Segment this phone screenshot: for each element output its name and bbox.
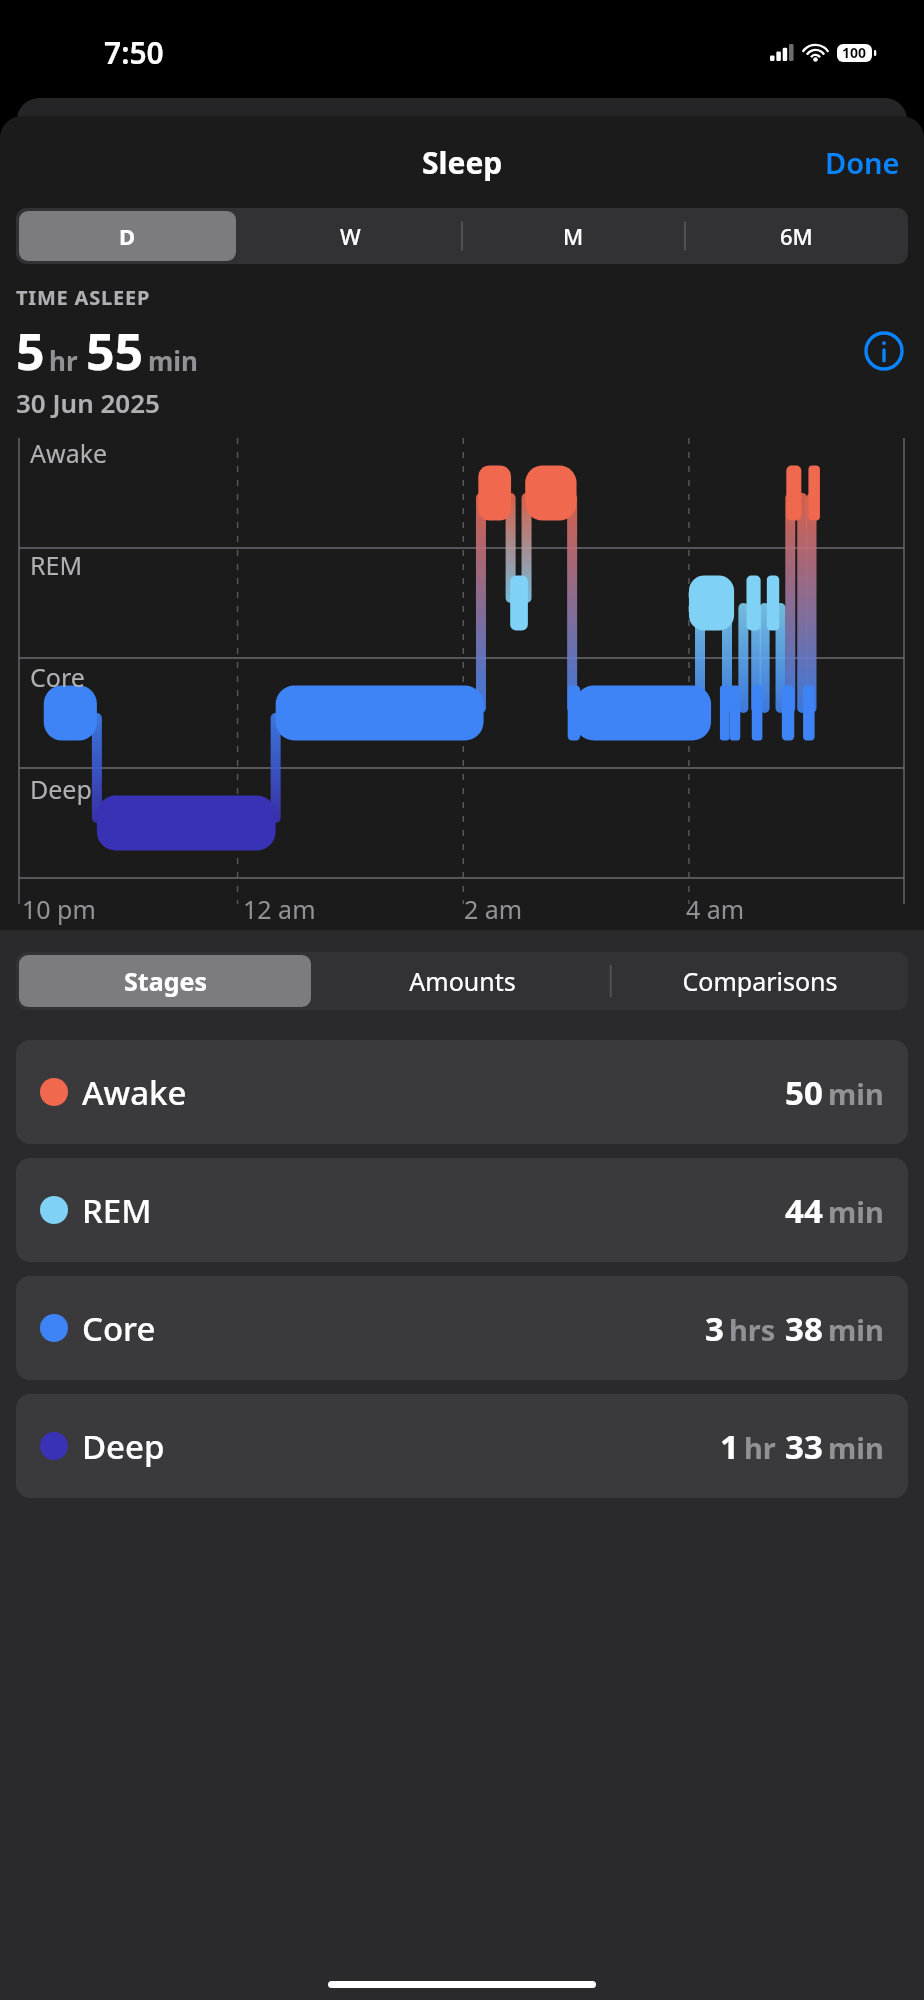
staticText: min — [828, 1310, 884, 1349]
staticText: Comparisons — [682, 964, 838, 998]
button[interactable]: Comparisons — [614, 955, 905, 1007]
staticText: REM — [30, 548, 83, 582]
button[interactable]: Awake — [16, 1040, 908, 1144]
staticText: Amounts — [409, 964, 516, 998]
staticText: Awake — [30, 436, 108, 470]
button[interactable]: W — [242, 211, 459, 261]
staticText: 4 am — [686, 892, 745, 926]
staticText: 33 — [785, 1424, 823, 1469]
staticText: 30 Jun 2025 — [16, 385, 160, 420]
staticText: min — [828, 1074, 884, 1113]
button[interactable]: Deep — [16, 1394, 908, 1498]
staticText: Deep — [30, 772, 92, 806]
staticText: hr — [49, 343, 78, 378]
staticText: Core — [30, 660, 85, 694]
staticText: Core — [82, 1306, 156, 1351]
staticText: 10 pm — [22, 892, 96, 926]
staticText: Stages — [124, 964, 207, 998]
staticText: TIME ASLEEP — [16, 284, 151, 311]
button[interactable]: D — [19, 211, 236, 261]
staticText: 50 — [785, 1070, 823, 1115]
staticText: 7:50 — [104, 32, 164, 73]
button[interactable]: 6M — [688, 211, 905, 261]
staticText: 55 — [86, 317, 144, 385]
staticText: 3 — [705, 1306, 724, 1351]
staticText: M — [563, 221, 584, 251]
staticText: 6M — [780, 221, 813, 251]
staticText: Deep — [82, 1424, 165, 1469]
staticText: min — [148, 343, 199, 378]
button[interactable]: Stages — [19, 955, 311, 1007]
staticText: min — [828, 1192, 884, 1231]
staticText: Sleep — [422, 142, 503, 183]
staticText: 1 — [720, 1424, 739, 1469]
staticText: 2 am — [464, 892, 523, 926]
staticText: REM — [82, 1188, 152, 1233]
button[interactable]: Done — [815, 135, 910, 190]
staticText: hrs — [729, 1310, 776, 1349]
staticText: 44 — [785, 1188, 823, 1233]
staticText: min — [828, 1428, 884, 1467]
button[interactable]: M — [465, 211, 682, 261]
staticText: 38 — [785, 1306, 823, 1351]
staticText: 100 — [842, 43, 867, 62]
staticText: hr — [744, 1428, 776, 1467]
staticText: Awake — [82, 1070, 187, 1115]
staticText: 5 — [16, 317, 45, 385]
staticText: 12 am — [243, 892, 316, 926]
staticText: W — [340, 221, 361, 251]
button[interactable]: Core — [16, 1276, 908, 1380]
staticText: Done — [825, 143, 900, 182]
button[interactable]: About sleep stages — [860, 327, 908, 375]
button[interactable]: Amounts — [317, 955, 608, 1007]
button[interactable]: REM — [16, 1158, 908, 1262]
staticText: D — [119, 221, 136, 251]
